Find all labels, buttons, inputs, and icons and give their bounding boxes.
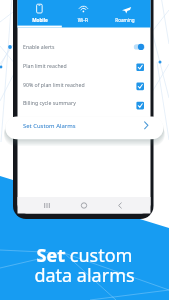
staticText: Roaming	[103, 17, 147, 25]
button[interactable]: Home	[72, 197, 96, 214]
staticText: Enable alerts	[23, 43, 55, 50]
button[interactable]: Set Custom Alarms	[18, 116, 151, 135]
staticText: Mobile	[18, 17, 62, 25]
button[interactable]: Enable alerts	[18, 36, 151, 55]
staticText: Set Custom Alarms	[23, 122, 76, 130]
staticText: Set custom	[0, 243, 169, 300]
button[interactable]: Billing cycle summary	[18, 92, 151, 111]
staticText: data alarms	[0, 263, 169, 300]
staticText: Plan limit reached	[23, 62, 67, 69]
staticText: 90% of plan limit reached	[23, 81, 85, 88]
staticText: Billing cycle summary	[23, 99, 76, 106]
button[interactable]: Roaming	[103, 0, 147, 28]
button[interactable]: Plan limit reached	[18, 55, 151, 74]
button[interactable]: Mobile	[18, 0, 62, 28]
button[interactable]: Back	[108, 197, 132, 214]
button[interactable]: Recent apps	[35, 197, 59, 214]
staticText: Wi-Fi	[61, 17, 105, 25]
button[interactable]: 90% of plan limit reached	[18, 74, 151, 93]
button[interactable]: Wi-Fi	[61, 0, 105, 28]
